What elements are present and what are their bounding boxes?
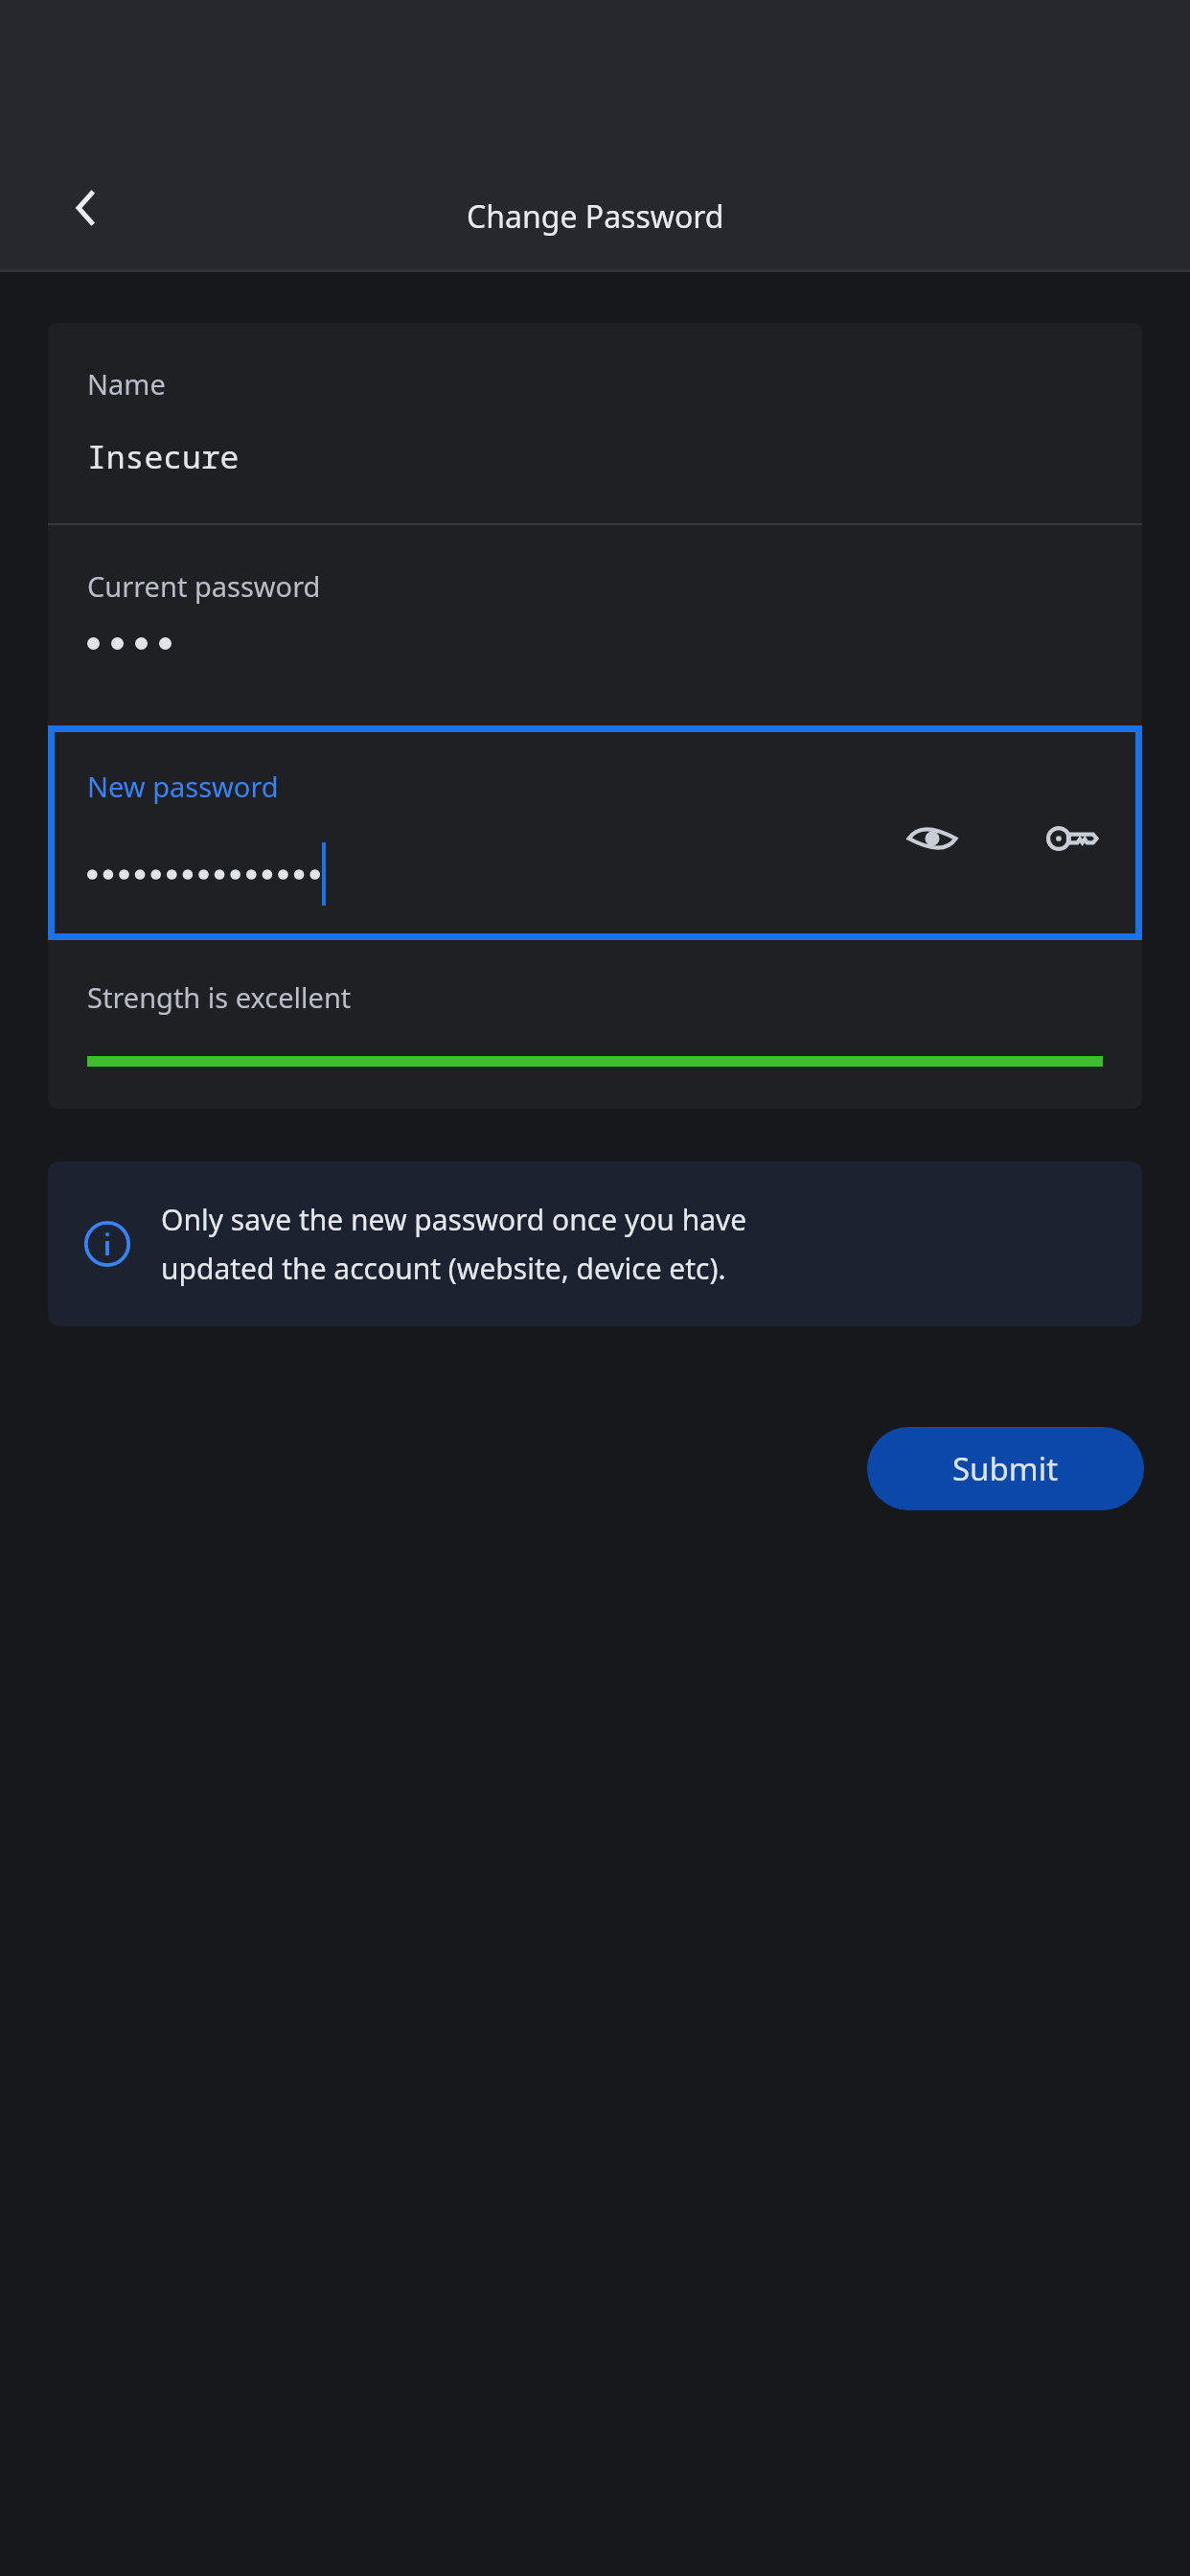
button[interactable]: Name [48, 323, 1142, 523]
button[interactable]: Back [59, 181, 113, 235]
button[interactable]: Generate password [1031, 797, 1113, 880]
staticText: Only save the new password once you have [161, 1200, 747, 1239]
staticText: Insecure [87, 435, 240, 478]
button[interactable]: Show password [891, 797, 973, 880]
staticText: Strength is excellent [87, 978, 352, 1016]
staticText: New password [87, 768, 279, 805]
button[interactable]: Submit [867, 1427, 1144, 1510]
button[interactable]: New password [48, 725, 1142, 940]
staticText: Name [87, 365, 166, 402]
staticText: updated the account (website, device etc… [161, 1249, 726, 1288]
staticText: Current password [87, 567, 321, 605]
staticText: Change Password [467, 195, 724, 238]
staticText: Submit [952, 1447, 1059, 1490]
button[interactable]: Current password [48, 525, 1142, 725]
